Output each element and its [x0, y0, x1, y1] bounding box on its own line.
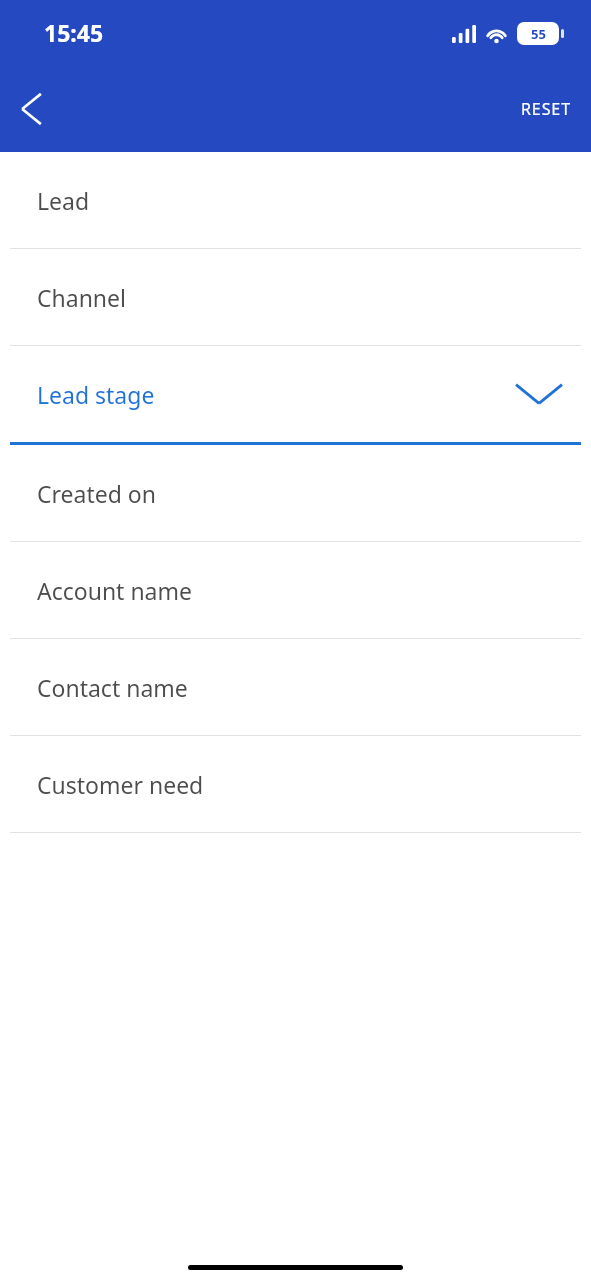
button[interactable]: Channel: [0, 249, 591, 346]
staticText: Lead: [37, 185, 90, 216]
staticText: RESET: [521, 98, 571, 120]
staticText: Lead stage: [37, 379, 155, 410]
staticText: Contact name: [37, 672, 188, 703]
button[interactable]: Created on: [0, 445, 591, 542]
staticText: 55: [531, 25, 546, 43]
button[interactable]: Back: [0, 78, 62, 140]
staticText: Account name: [37, 575, 192, 606]
staticText: 15:45: [44, 17, 104, 48]
button[interactable]: Lead: [0, 152, 591, 249]
button[interactable]: Lead stage: [0, 346, 591, 445]
button[interactable]: Contact name: [0, 639, 591, 736]
button[interactable]: RESET: [501, 84, 591, 134]
staticText: Customer need: [37, 769, 204, 800]
button[interactable]: Customer need: [0, 736, 591, 833]
button[interactable]: Account name: [0, 542, 591, 639]
staticText: Channel: [37, 282, 126, 313]
staticText: Created on: [37, 478, 156, 509]
